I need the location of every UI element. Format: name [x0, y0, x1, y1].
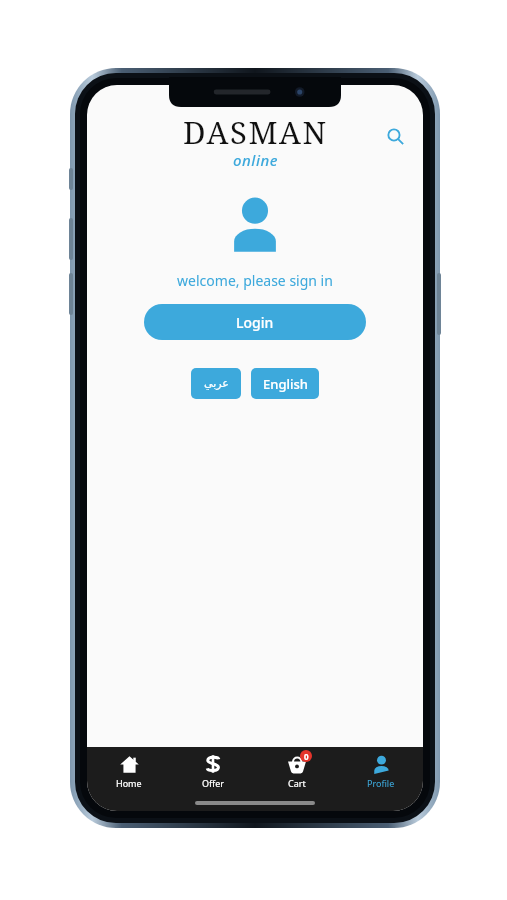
staticText: Profile [367, 777, 395, 789]
staticText: Cart [288, 777, 306, 789]
button[interactable]: 0 [255, 749, 339, 793]
staticText: 0 [304, 751, 309, 762]
staticText: عربي [204, 377, 229, 390]
staticText: Login [236, 313, 274, 332]
staticText: DASMAN [183, 111, 328, 153]
button[interactable]: Search [377, 118, 413, 154]
button[interactable]: Profile [339, 749, 423, 793]
staticText: English [263, 375, 308, 393]
button[interactable]: عربي [191, 368, 241, 399]
button[interactable]: Offer [171, 749, 255, 793]
staticText: Offer [202, 777, 225, 789]
staticText: Home [116, 777, 142, 789]
button[interactable]: English [251, 368, 319, 399]
staticText: online [233, 150, 278, 170]
button[interactable]: Login [144, 304, 366, 340]
button[interactable]: Home [87, 749, 171, 793]
staticText: welcome, please sign in [87, 271, 423, 290]
